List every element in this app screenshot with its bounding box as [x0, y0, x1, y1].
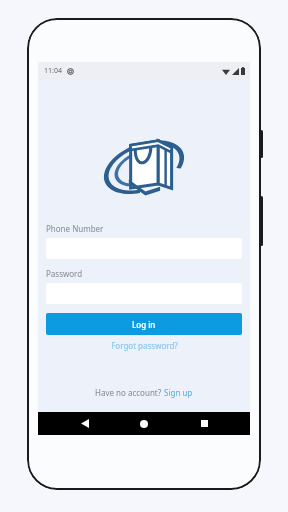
staticText: Log in — [132, 319, 156, 330]
staticText: 11:04 — [44, 66, 62, 76]
staticText: Password — [46, 268, 83, 279]
button[interactable]: Back — [72, 412, 98, 435]
staticText: Phone Number — [46, 223, 104, 234]
button[interactable]: Home — [131, 412, 157, 435]
staticText: Sign up — [164, 387, 193, 398]
button[interactable]: Forgot password? — [46, 340, 242, 351]
button[interactable]: Recent apps — [191, 412, 217, 435]
button[interactable]: Log in — [46, 313, 242, 335]
staticText: Forgot password? — [111, 340, 178, 351]
staticText: Have no account? — [95, 387, 164, 398]
button[interactable]: Sign up — [164, 387, 193, 398]
